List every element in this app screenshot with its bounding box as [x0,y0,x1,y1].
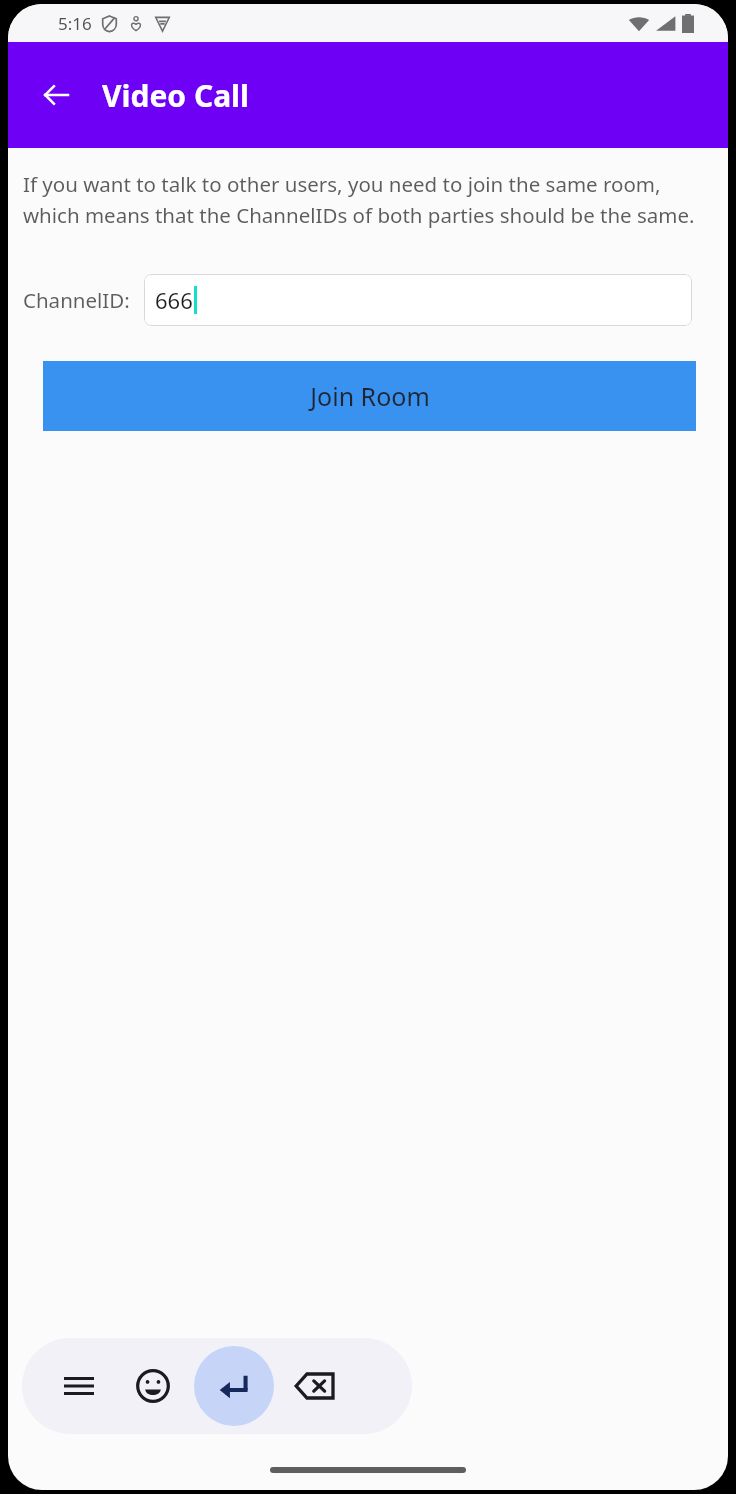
button[interactable]: Emoji [122,1355,184,1417]
staticText: If you want to talk to other users, you … [23,170,715,229]
button[interactable]: Backspace [284,1355,346,1417]
staticText: Join Room [310,379,430,413]
button[interactable]: Back [28,67,84,123]
staticText: 666 [155,285,193,315]
staticText: 5:16 [58,12,92,35]
staticText: Video Call [102,75,249,116]
staticText: ChannelID: [23,286,130,314]
button[interactable]: Keyboard settings [48,1355,110,1417]
button[interactable]: 666 [144,274,692,326]
button[interactable]: Enter [194,1346,274,1426]
button[interactable]: Join Room [43,361,696,431]
